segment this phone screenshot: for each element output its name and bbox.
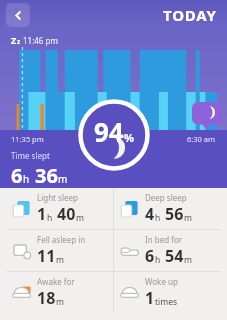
staticText: h [47, 212, 53, 224]
button[interactable]: Fell asleep in [6, 230, 113, 271]
button[interactable]: Light sleep [6, 188, 113, 229]
staticText: TODAY [163, 5, 217, 25]
button[interactable]: In bed for [114, 230, 221, 271]
staticText: 11:35 pm [11, 134, 44, 144]
staticText: h [155, 212, 161, 224]
staticText: 11:46 pm [23, 35, 58, 46]
staticText: Awake for [37, 276, 75, 287]
button[interactable]: Woke up [114, 272, 221, 313]
staticText: 1 [145, 287, 155, 309]
staticText: 6:30 am [187, 134, 216, 144]
staticText: m [58, 172, 68, 186]
staticText: 36 [35, 162, 58, 188]
staticText: Fell asleep in [37, 234, 86, 245]
staticText: Woke up [145, 276, 178, 287]
staticText: 6 [11, 162, 23, 188]
staticText: 18 [37, 287, 56, 309]
staticText: 94 [94, 114, 124, 149]
staticText: z [17, 37, 21, 46]
staticText: Time slept [11, 150, 50, 161]
staticText: m [184, 254, 192, 266]
button[interactable]: Awake for [6, 272, 113, 313]
staticText: Deep sleep [145, 192, 187, 203]
staticText: m [76, 212, 84, 224]
staticText: 54 [165, 245, 184, 267]
staticText: times [155, 296, 178, 308]
staticText: 40 [57, 203, 76, 225]
staticText: 1 [37, 203, 47, 225]
staticText: m [56, 296, 64, 308]
staticText: 11 [37, 245, 56, 267]
staticText: 6 [145, 245, 155, 267]
staticText: h [23, 172, 30, 186]
staticText: m [184, 212, 192, 224]
staticText: In bed for [145, 234, 183, 245]
staticText: 4 [145, 203, 155, 225]
button[interactable]: Deep sleep [114, 188, 221, 229]
staticText: h [155, 254, 161, 266]
staticText: Z [11, 34, 17, 46]
button[interactable]: Sleep mode [192, 102, 222, 130]
staticText: % [124, 130, 134, 145]
staticText: 56 [165, 203, 184, 225]
staticText: m [56, 254, 64, 266]
button[interactable]: Back [6, 3, 30, 27]
staticText: Light sleep [37, 192, 78, 203]
